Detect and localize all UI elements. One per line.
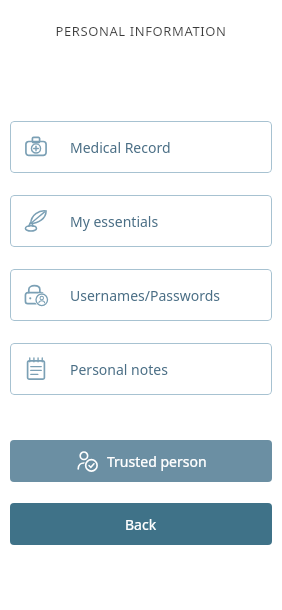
staticText: My essentials (70, 212, 159, 231)
button[interactable]: Personal notes (10, 343, 272, 395)
button[interactable]: My essentials (10, 195, 272, 247)
staticText: Usernames/Passwords (70, 286, 221, 305)
staticText: Medical Record (70, 138, 171, 157)
staticText: Trusted person (107, 452, 207, 471)
button[interactable]: Back (10, 503, 272, 545)
staticText: Personal notes (70, 360, 168, 379)
staticText: Back (125, 515, 157, 534)
button[interactable]: Medical Record (10, 121, 272, 173)
staticText: PERSONAL INFORMATION (0, 22, 282, 40)
button[interactable]: Trusted person (10, 440, 272, 482)
button[interactable]: Usernames/Passwords (10, 269, 272, 321)
